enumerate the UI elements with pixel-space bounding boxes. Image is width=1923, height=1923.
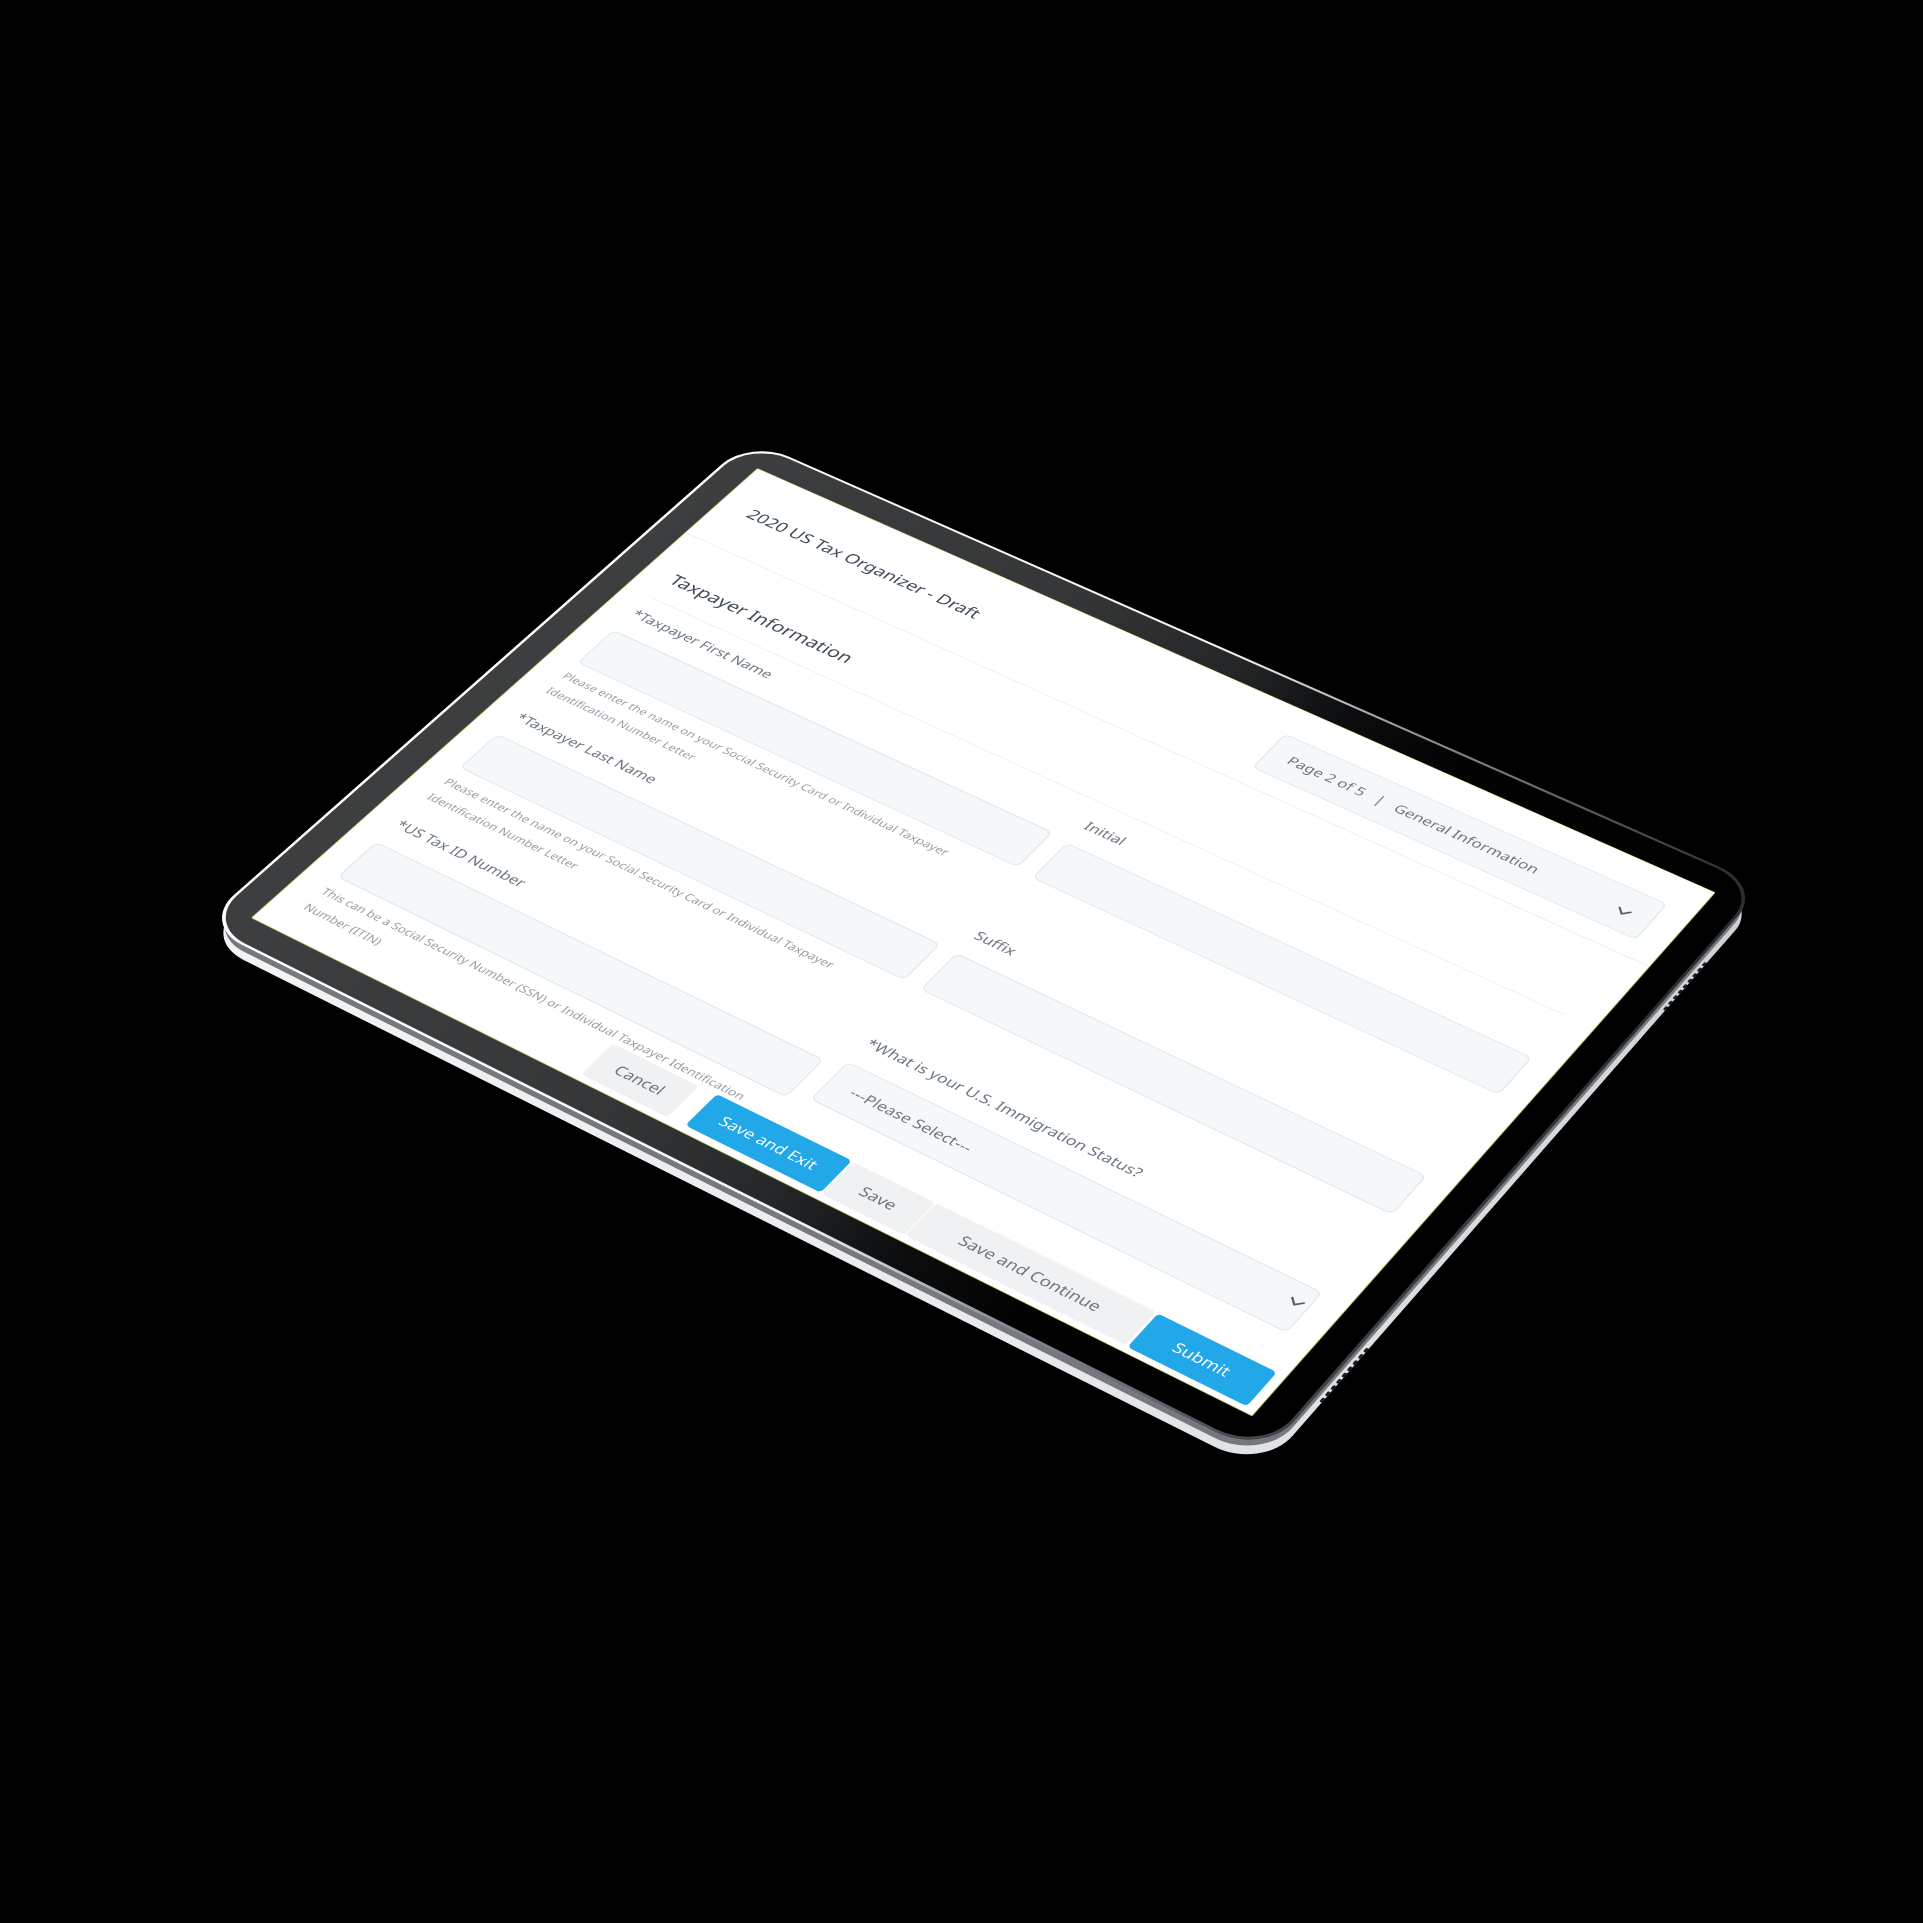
button[interactable]: Save and Exit xyxy=(685,1094,852,1192)
button[interactable]: Save and Continue xyxy=(905,1203,1156,1345)
button[interactable]: Initial xyxy=(1033,843,1531,1094)
button[interactable]: US Tax ID Number xyxy=(338,843,823,1097)
button[interactable]: Submit xyxy=(1127,1314,1277,1407)
button[interactable]: Save xyxy=(822,1162,936,1235)
button[interactable]: Taxpayer Last Name xyxy=(460,735,939,980)
button[interactable]: Page 2 of 5, General Information xyxy=(1253,734,1667,939)
button[interactable]: Cancel xyxy=(581,1044,699,1118)
button[interactable]: Suffix xyxy=(921,954,1426,1214)
button[interactable]: US Immigration Status xyxy=(811,1062,1322,1332)
button[interactable]: 2020 US Tax Organizer tablet preview xyxy=(0,0,1923,1923)
button[interactable]: Taxpayer First Name xyxy=(578,631,1052,867)
